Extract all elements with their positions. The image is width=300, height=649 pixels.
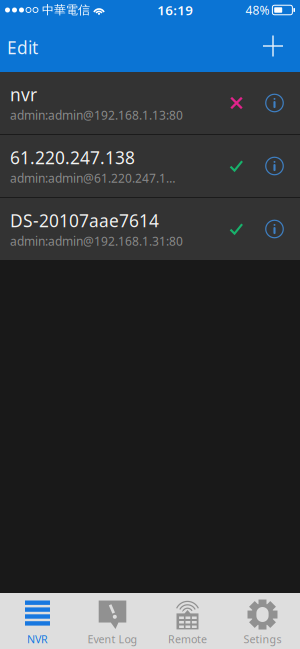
staticText: admin:admin@61.220.247.1… [10, 170, 175, 186]
staticText: Setings [243, 632, 281, 646]
staticText: Event Log [87, 632, 137, 646]
staticText: Remote [168, 632, 207, 646]
button[interactable]: DS-20107aae7614 [0, 198, 300, 260]
staticText: 61.220.247.138 [10, 146, 135, 169]
button[interactable]: nvr [0, 72, 300, 134]
button[interactable]: Event Log [75, 593, 150, 649]
staticText: 16:19 [157, 1, 193, 19]
button[interactable]: NVR [0, 593, 75, 649]
button[interactable]: Add [251, 20, 300, 72]
staticText: Edit [7, 36, 38, 59]
staticText: 中華電信 [42, 3, 90, 17]
staticText: admin:admin@192.168.1.31:80 [10, 233, 183, 249]
button[interactable]: Remote [150, 593, 225, 649]
staticText: admin:admin@192.168.1.13:80 [10, 107, 183, 123]
staticText: 48% [245, 2, 269, 18]
staticText: NVR [27, 632, 48, 646]
staticText: nvr [10, 83, 37, 106]
button[interactable]: Edit [0, 20, 47, 72]
button[interactable]: 61.220.247.138 [0, 135, 300, 197]
staticText: DS-20107aae7614 [10, 209, 159, 232]
button[interactable]: Setings [225, 593, 300, 649]
